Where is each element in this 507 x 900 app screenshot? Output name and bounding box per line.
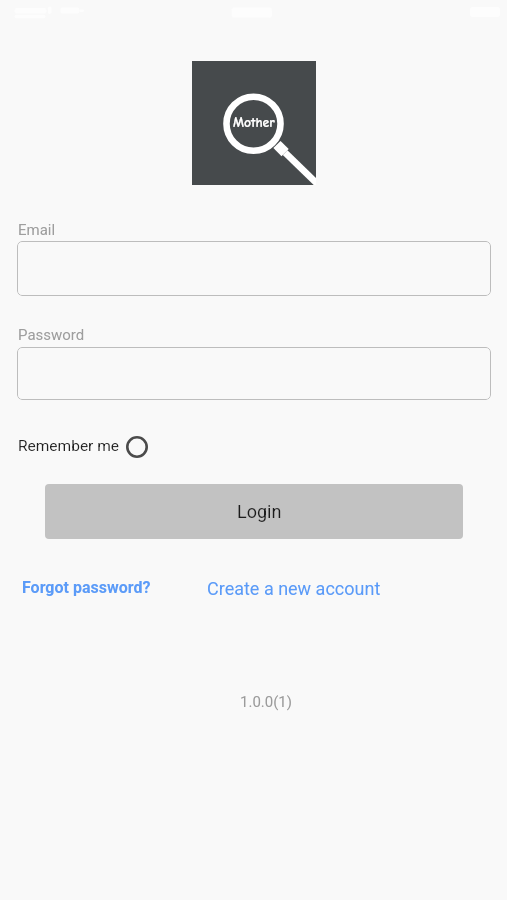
button[interactable]: Email input [17,241,491,296]
button[interactable]: Remember me [18,436,148,458]
staticText: Create a new account [207,578,381,599]
staticText: Login [237,501,282,522]
button[interactable]: Forgot password? [22,578,151,597]
staticText: Email [18,221,56,239]
staticText: 1.0.0(1) [240,693,292,711]
staticText: Forgot password? [22,578,151,597]
button[interactable]: Login [45,484,463,539]
staticText: Mother [233,115,275,131]
button[interactable]: Password input [17,347,491,400]
staticText: Password [18,326,85,344]
button[interactable]: Create a new account [207,578,381,599]
staticText: Remember me [18,437,120,455]
